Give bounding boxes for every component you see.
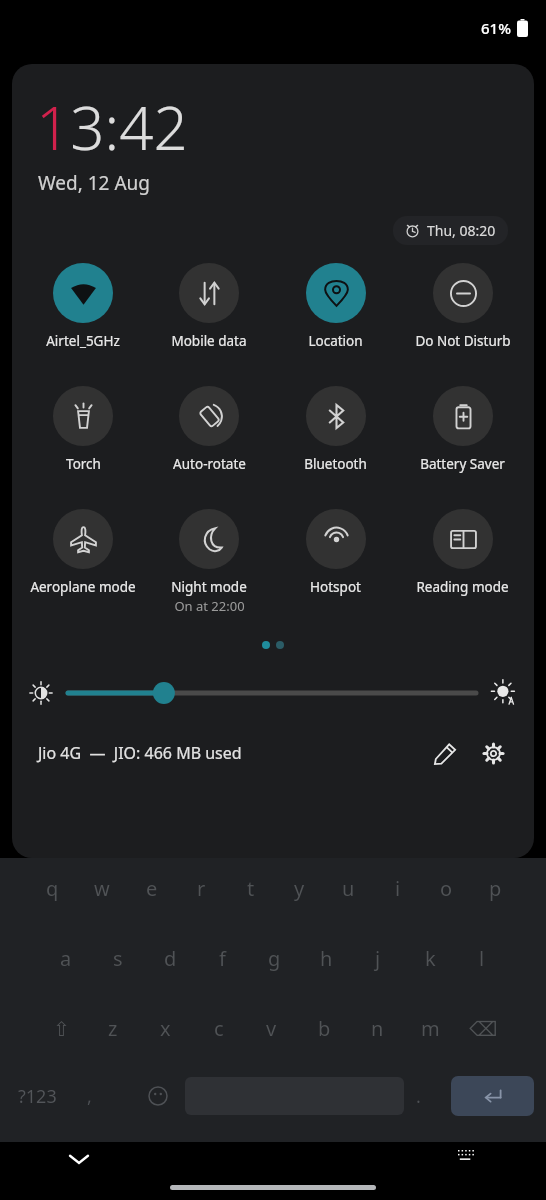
staticText: On at 22:00 (174, 597, 245, 615)
staticText: Auto-rotate (173, 455, 246, 473)
staticText: Torch (66, 455, 101, 473)
staticText: Hotspot (310, 578, 361, 596)
button[interactable]: Bluetooth (272, 384, 399, 475)
staticText: h (320, 945, 333, 972)
button[interactable]: Thu, 08:20 (393, 216, 508, 245)
staticText: j (375, 945, 381, 972)
staticText: k (425, 945, 436, 972)
button[interactable]: Battery Saver (399, 384, 526, 475)
button[interactable]: Night mode (146, 507, 272, 617)
staticText: e (146, 875, 158, 902)
button[interactable]: Hide keyboard (62, 1142, 96, 1176)
staticText: q (46, 875, 59, 902)
button[interactable]: Settings (474, 734, 512, 772)
staticText: Bluetooth (304, 455, 367, 473)
button[interactable]: Airtel_5GHz (20, 261, 146, 352)
staticText: r (197, 875, 206, 902)
staticText: ⌫ (469, 1017, 498, 1040)
staticText: w (94, 875, 110, 902)
button[interactable]: Reading mode (399, 507, 526, 598)
staticText: Mobile data (171, 332, 247, 350)
staticText: z (108, 1015, 118, 1042)
button[interactable]: Torch (20, 384, 146, 475)
button[interactable]: Do Not Disturb (399, 261, 526, 352)
staticText: ⇧ (53, 1017, 70, 1040)
staticText: t (247, 875, 255, 902)
staticText: 13:42 (36, 86, 188, 168)
other: Low brightness (28, 680, 54, 706)
staticText: , (87, 1084, 130, 1109)
staticText: p (489, 875, 502, 902)
staticText: f (219, 945, 226, 972)
button[interactable]: Auto-rotate (146, 384, 272, 475)
staticText: a (60, 945, 72, 972)
staticText: Do Not Disturb (415, 332, 511, 350)
staticText: c (214, 1015, 224, 1042)
staticText: Airtel_5GHz (46, 332, 120, 350)
staticText: u (342, 875, 355, 902)
button[interactable]: Edit tiles (426, 734, 464, 772)
button[interactable]: Aeroplane mode (20, 507, 146, 598)
staticText: s (113, 945, 123, 972)
staticText: Jio 4G — JIO: 466 MB used (38, 742, 242, 764)
staticText: i (395, 875, 401, 902)
staticText: x (160, 1015, 171, 1042)
button[interactable]: Location (272, 261, 399, 352)
staticText: v (266, 1015, 277, 1042)
staticText: Location (308, 332, 363, 350)
staticText: ?123 (18, 1084, 87, 1109)
staticText: Night mode (171, 578, 247, 596)
button[interactable] (68, 673, 476, 713)
staticText: y (294, 875, 305, 902)
staticText: m (421, 1015, 440, 1042)
staticText: b (318, 1015, 331, 1042)
staticText: Thu, 08:20 (427, 221, 496, 240)
staticText: Reading mode (416, 578, 509, 596)
button[interactable]: Change keyboard (450, 1142, 484, 1176)
staticText: g (268, 945, 281, 972)
button[interactable]: Mobile data (146, 261, 272, 352)
staticText: n (371, 1015, 384, 1042)
staticText: Wed, 12 Aug (38, 170, 150, 196)
other: Auto brightness (490, 679, 518, 707)
staticText: Battery Saver (420, 455, 505, 473)
button[interactable]: Hotspot (272, 507, 399, 598)
staticText: d (164, 945, 177, 972)
staticText: 61% (481, 18, 511, 38)
staticText: l (479, 945, 485, 972)
staticText: Aeroplane mode (30, 578, 136, 596)
staticText: o (440, 875, 453, 902)
